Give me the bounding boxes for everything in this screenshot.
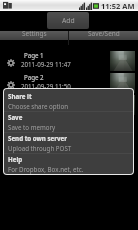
- button[interactable]: Page options: [0, 50, 138, 72]
- button[interactable]: Send to own server: [4, 133, 133, 153]
- staticText: Share it: [8, 92, 32, 100]
- other: Page options: [7, 59, 15, 67]
- staticText: 11:52 AM: [101, 1, 135, 11]
- other: Page options: [7, 103, 15, 111]
- button[interactable]: Help: [4, 154, 133, 174]
- staticText: 2011-09-29 11:47: [21, 60, 71, 68]
- staticText: 2011-09-29 11:50: [21, 82, 71, 90]
- staticText: For Dropbox, Box.net, etc.: [8, 165, 84, 173]
- staticText: Save to memory: [8, 123, 56, 131]
- staticText: Page 3: [24, 95, 44, 103]
- staticText: Save/Send: [88, 29, 120, 38]
- button[interactable]: Settings: [0, 31, 68, 40]
- staticText: Add: [62, 16, 75, 25]
- button[interactable]: Page options: [0, 94, 138, 116]
- staticText: Help: [8, 155, 23, 163]
- staticText: Settings: [22, 29, 47, 38]
- other: Page options: [7, 81, 15, 89]
- staticText: Send to own server: [8, 134, 68, 142]
- staticText: Page 2: [24, 73, 44, 81]
- button[interactable]: Share it: [4, 91, 133, 111]
- staticText: Choose share option: [8, 102, 69, 110]
- staticText: Page 1: [24, 51, 44, 59]
- staticText: Save: [8, 113, 23, 121]
- button[interactable]: Save: [4, 112, 133, 132]
- button[interactable]: Page options: [0, 72, 138, 94]
- staticText: 2011-09-29 11:52: [21, 104, 71, 112]
- button[interactable]: Save/Send: [69, 31, 138, 40]
- staticText: Upload through POST: [8, 144, 72, 152]
- button[interactable]: Add: [47, 12, 89, 29]
